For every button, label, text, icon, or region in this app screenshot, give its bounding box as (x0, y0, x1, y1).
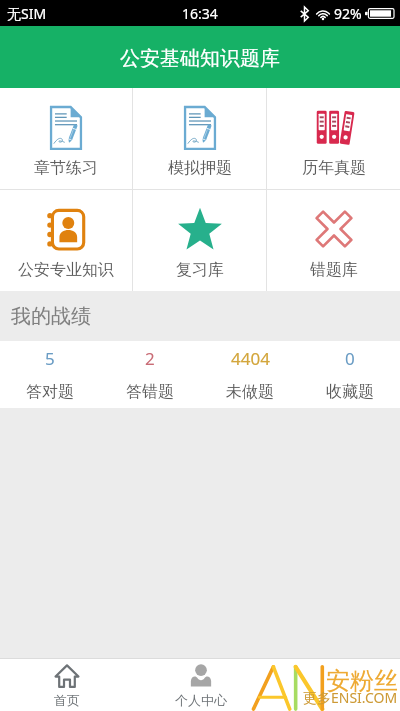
button[interactable]: 5 (0, 341, 100, 408)
staticText: 答对题 (26, 382, 74, 402)
button[interactable]: 4404 (200, 341, 300, 408)
staticText: 更多ENSI.COM (303, 688, 398, 707)
staticText: 个人中心 (175, 692, 227, 708)
staticText: 首页 (54, 692, 80, 708)
staticText: 2 (145, 347, 155, 370)
button[interactable]: 复习库 (133, 190, 266, 291)
staticText: 无SIM (7, 4, 47, 23)
staticText: 5 (45, 347, 55, 370)
staticText: 0 (345, 347, 355, 370)
staticText: 公安专业知识 (18, 260, 114, 280)
button[interactable]: 2 (100, 341, 200, 408)
staticText: 4404 (231, 347, 270, 370)
staticText: 我的战绩 (11, 304, 91, 329)
button[interactable]: 0 (300, 341, 400, 408)
staticText: 收藏题 (326, 382, 374, 402)
staticText: 未做题 (226, 382, 274, 402)
staticText: 16:34 (182, 4, 218, 23)
staticText: 章节练习 (34, 158, 98, 178)
button[interactable]: 历年真题 (267, 88, 400, 189)
staticText: 历年真题 (302, 158, 366, 178)
button[interactable]: 模拟押题 (133, 88, 266, 189)
staticText: 错题库 (310, 260, 358, 280)
button[interactable]: 错题库 (267, 190, 400, 291)
button[interactable]: 章节练习 (0, 88, 132, 189)
staticText: 复习库 (176, 260, 224, 280)
staticText: 公安基础知识题库 (120, 46, 280, 71)
button[interactable]: 公安专业知识 (0, 190, 132, 291)
staticText: 答错题 (126, 382, 174, 402)
staticText: 模拟押题 (168, 158, 232, 178)
staticText: 安粉丝 (326, 666, 398, 696)
staticText: 92% (334, 4, 362, 23)
button[interactable]: 个人中心 (134, 659, 267, 711)
button[interactable]: 首页 (0, 659, 134, 711)
